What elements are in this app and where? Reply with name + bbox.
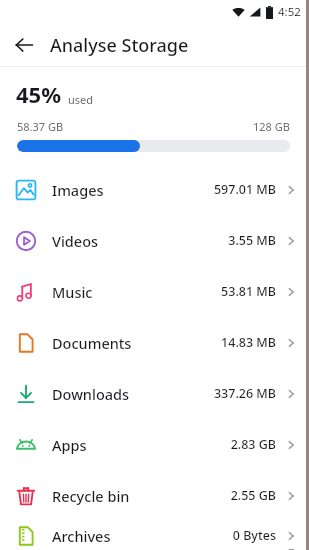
staticText: Analyse Storage (50, 33, 189, 58)
staticText: 0 Bytes (232, 527, 276, 544)
staticText: 53.81 MB (221, 283, 276, 300)
staticText: 128 GB (253, 119, 290, 134)
button[interactable]: Back (8, 29, 40, 61)
staticText: 2.83 GB (230, 436, 276, 453)
staticText: Images (52, 180, 104, 200)
staticText: Videos (52, 231, 99, 251)
staticText: 3.55 MB (228, 232, 276, 249)
staticText: Music (52, 282, 93, 302)
staticText: 597.01 MB (213, 181, 276, 198)
button[interactable]: Archives (0, 521, 309, 550)
staticText: 2.55 GB (230, 487, 276, 504)
button[interactable]: Music (0, 266, 309, 317)
staticText: 58.37 GB (17, 119, 64, 134)
button[interactable]: Apps (0, 419, 309, 470)
button[interactable]: Images (0, 164, 309, 215)
staticText: 4:52 (278, 4, 301, 20)
button[interactable]: Documents (0, 317, 309, 368)
staticText: 337.26 MB (213, 385, 276, 402)
staticText: used (68, 92, 94, 107)
staticText: Archives (52, 526, 111, 546)
staticText: 14.83 MB (221, 334, 276, 351)
button[interactable]: Downloads (0, 368, 309, 419)
staticText: Documents (52, 333, 132, 353)
staticText: Apps (52, 435, 87, 455)
staticText: 45% (16, 79, 62, 109)
button[interactable]: Videos (0, 215, 309, 266)
staticText: Recycle bin (52, 486, 130, 506)
staticText: Downloads (52, 384, 130, 404)
button[interactable]: Recycle bin (0, 470, 309, 521)
